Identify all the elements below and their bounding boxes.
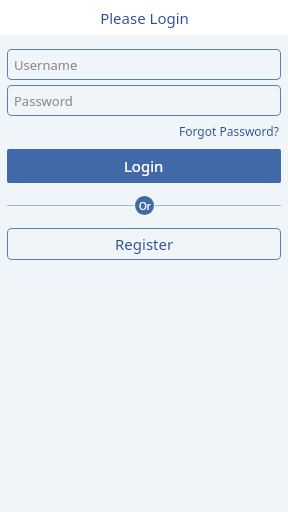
button[interactable]: Password: [7, 85, 281, 116]
staticText: Forgot Password?: [179, 123, 279, 139]
button[interactable]: Login: [7, 149, 281, 183]
staticText: Please Login: [100, 8, 189, 28]
staticText: Login: [124, 156, 164, 176]
staticText: Username: [14, 56, 78, 74]
button[interactable]: Register: [7, 228, 281, 260]
button[interactable]: Username: [7, 49, 281, 80]
staticText: Password: [14, 92, 73, 110]
staticText: Register: [115, 234, 174, 254]
button[interactable]: Forgot Password?: [177, 120, 281, 142]
staticText: Or: [139, 199, 151, 213]
